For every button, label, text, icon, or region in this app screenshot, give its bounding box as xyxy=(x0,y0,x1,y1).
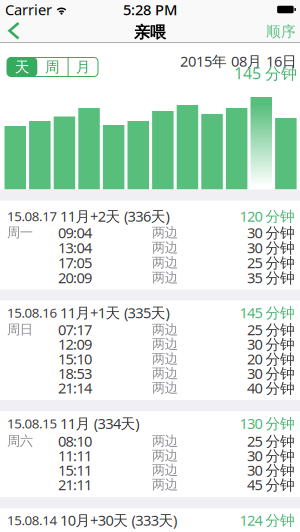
staticText: 120 分钟 xyxy=(239,206,295,226)
staticText: 天 xyxy=(15,58,30,76)
button[interactable]: 20:09 xyxy=(0,270,300,284)
staticText: 11月 (334天) xyxy=(60,414,139,433)
button[interactable]: 21:11 xyxy=(0,477,300,491)
staticText: 40 分钟 xyxy=(247,378,295,398)
staticText: 月 xyxy=(76,58,91,76)
staticText: 35 分钟 xyxy=(247,268,295,287)
staticText: 两边 xyxy=(152,224,178,241)
staticText: 15.08.16 xyxy=(7,304,57,321)
button[interactable]: 12:09 xyxy=(0,337,300,351)
staticText: 130 分钟 xyxy=(239,414,295,433)
staticText: 20:09 xyxy=(58,268,92,287)
staticText: 15:11 xyxy=(58,460,92,480)
staticText: 两边 xyxy=(152,350,178,367)
button[interactable]: 15:11 xyxy=(0,463,300,477)
button[interactable]: 18:53 xyxy=(0,366,300,380)
button[interactable]: 周一 xyxy=(0,225,300,239)
staticText: 两边 xyxy=(152,476,178,493)
staticText: 25 分钟 xyxy=(247,320,295,339)
staticText: 两边 xyxy=(152,447,178,464)
button[interactable]: 月 xyxy=(69,57,98,76)
staticText: 周一 xyxy=(7,224,33,241)
staticText: 30 分钟 xyxy=(247,238,295,257)
staticText: 亲喂 xyxy=(134,23,166,42)
staticText: 08:10 xyxy=(58,431,92,451)
button[interactable]: 13:04 xyxy=(0,240,300,254)
staticText: 20 分钟 xyxy=(247,349,295,368)
staticText: 两边 xyxy=(152,380,178,396)
staticText: 15:10 xyxy=(58,349,92,368)
staticText: 周六 xyxy=(7,433,33,449)
staticText: 两边 xyxy=(152,336,178,352)
staticText: 25 分钟 xyxy=(247,431,295,451)
staticText: 09:04 xyxy=(58,223,92,242)
staticText: 11月+1天 (335天) xyxy=(60,303,169,322)
staticText: 11月+2天 (336天) xyxy=(60,206,169,226)
staticText: 周 xyxy=(45,58,60,76)
staticText: 12:09 xyxy=(58,334,92,354)
button[interactable]: 周六 xyxy=(0,434,300,448)
staticText: 两边 xyxy=(152,269,178,286)
staticText: 30 分钟 xyxy=(247,334,295,354)
staticText: 30 分钟 xyxy=(247,460,295,480)
button[interactable]: 15:10 xyxy=(0,352,300,366)
button[interactable]: 周日 xyxy=(0,322,300,336)
staticText: 21:11 xyxy=(58,475,92,494)
staticText: 两边 xyxy=(152,462,178,478)
staticText: 顺序 xyxy=(266,22,296,40)
staticText: 两边 xyxy=(152,254,178,271)
staticText: 21:14 xyxy=(58,378,92,398)
staticText: 30 分钟 xyxy=(247,446,295,465)
staticText: 124 分钟 xyxy=(239,510,295,530)
button[interactable]: 11:11 xyxy=(0,448,300,462)
staticText: 17:05 xyxy=(58,253,92,272)
staticText: 5:28 PM xyxy=(123,0,177,19)
staticText: 25 分钟 xyxy=(247,253,295,272)
staticText: 两边 xyxy=(152,365,178,381)
staticText: 周日 xyxy=(7,321,33,338)
staticText: 两边 xyxy=(152,433,178,449)
staticText: 15.08.17 xyxy=(7,207,57,225)
staticText: 13:04 xyxy=(58,238,92,257)
button[interactable]: 顺序 xyxy=(266,22,296,40)
staticText: 07:17 xyxy=(58,320,92,339)
staticText: 11:11 xyxy=(58,446,92,465)
staticText: 15.08.15 xyxy=(7,414,57,432)
button[interactable]: 天 xyxy=(7,57,37,76)
staticText: 45 分钟 xyxy=(247,475,295,494)
staticText: 30 分钟 xyxy=(247,223,295,242)
staticText: 145 分钟 xyxy=(239,303,295,322)
staticText: 两边 xyxy=(152,321,178,338)
staticText: 30 分钟 xyxy=(247,364,295,383)
staticText: 145 分钟 xyxy=(234,62,297,84)
staticText: 2015年 08月 16日 xyxy=(180,51,297,71)
button[interactable]: 周 xyxy=(37,57,68,76)
button[interactable]: 21:14 xyxy=(0,381,300,395)
staticText: 18:53 xyxy=(58,364,92,383)
button[interactable]: 17:05 xyxy=(0,255,300,269)
staticText: 两边 xyxy=(152,239,178,256)
staticText: 15.08.14 xyxy=(7,511,57,529)
button[interactable] xyxy=(9,23,18,38)
staticText: Carrier xyxy=(5,0,52,19)
staticText: 10月+30天 (333天) xyxy=(60,510,177,530)
